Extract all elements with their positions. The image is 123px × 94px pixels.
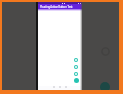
button[interactable]: Action <box>74 72 78 76</box>
button[interactable]: Action <box>74 58 78 62</box>
staticText: FloatingActionButton Test <box>40 5 73 9</box>
button[interactable]: Action <box>74 65 78 69</box>
button[interactable]: Add <box>74 78 79 83</box>
